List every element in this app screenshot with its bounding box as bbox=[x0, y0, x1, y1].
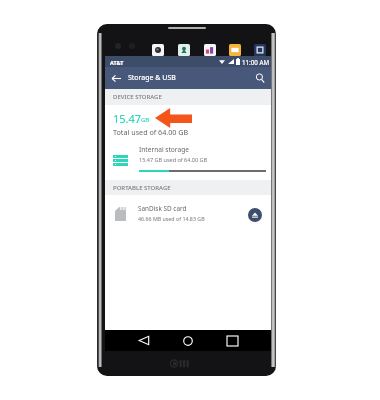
staticText: GB bbox=[141, 116, 150, 124]
staticText: PORTABLE STORAGE bbox=[113, 184, 171, 192]
button[interactable]: Screen capture bbox=[254, 44, 266, 56]
staticText: 15.47 GB used of 64.00 GB bbox=[139, 156, 208, 163]
staticText: DEVICE STORAGE bbox=[113, 93, 162, 101]
staticText: 46.66 MB used of 14.83 GB bbox=[138, 215, 205, 222]
button[interactable]: Recent apps bbox=[221, 330, 243, 351]
staticText: AT&T bbox=[110, 59, 124, 66]
staticText: Total used of 64.00 GB bbox=[113, 127, 189, 137]
button[interactable]: Notes bbox=[229, 44, 241, 56]
button[interactable]: Navigate up bbox=[107, 70, 125, 86]
button[interactable]: Camera bbox=[152, 44, 164, 56]
staticText: 11:00 AM bbox=[242, 58, 269, 66]
button[interactable]: Home bbox=[177, 330, 199, 351]
staticText: SanDisk SD card bbox=[138, 204, 187, 213]
button[interactable]: Gallery bbox=[204, 44, 216, 56]
button[interactable]: Eject SD card bbox=[248, 208, 262, 222]
button[interactable]: Search bbox=[250, 70, 270, 86]
staticText: Storage & USB bbox=[128, 73, 176, 83]
button[interactable]: Back bbox=[133, 330, 155, 351]
button[interactable]: Contacts bbox=[178, 44, 190, 56]
staticText: Internal storage bbox=[139, 145, 189, 154]
staticText: 15.47 bbox=[113, 111, 142, 126]
